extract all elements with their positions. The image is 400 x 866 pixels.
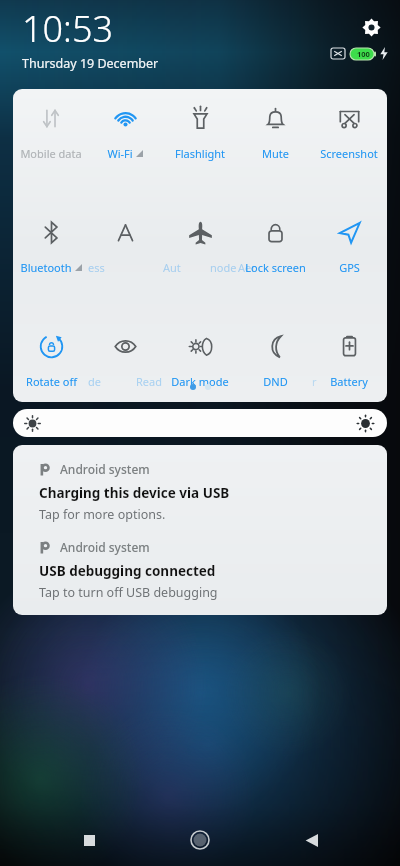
staticText: 100: [357, 49, 370, 59]
button[interactable]: Rotate off: [14, 333, 88, 389]
staticText: Android system: [60, 461, 150, 477]
button[interactable]: Android system: [13, 523, 387, 601]
button[interactable]: Bluetooth: [14, 219, 88, 275]
staticText: Flashlight: [175, 146, 225, 161]
button[interactable]: Dark mode: [163, 333, 237, 389]
staticText: DND: [263, 374, 288, 389]
button[interactable]: Recents: [67, 818, 111, 862]
button[interactable]: Back: [289, 818, 333, 862]
staticText: Charging this device via USB: [39, 484, 230, 502]
staticText: Battery: [330, 374, 368, 389]
button[interactable]: DND: [238, 333, 312, 389]
staticText: Rotate off: [26, 374, 77, 389]
staticText: Mute: [262, 146, 289, 161]
button[interactable]: Quick setting: [88, 219, 162, 275]
button[interactable]: Aer: [238, 219, 312, 275]
button[interactable]: Brightness: [13, 409, 387, 437]
staticText: Read: [136, 374, 162, 389]
button[interactable]: Screenshot: [312, 105, 386, 161]
staticText: GPS: [339, 260, 360, 275]
button[interactable]: Settings: [354, 10, 388, 44]
button[interactable]: r: [312, 333, 386, 389]
button[interactable]: Wi-Fi: [88, 105, 162, 161]
staticText: Wi-Fi: [107, 146, 133, 161]
staticText: Tap for more options.: [39, 506, 166, 523]
staticText: ess: [88, 260, 105, 275]
button[interactable]: Home: [178, 818, 222, 862]
button[interactable]: Mute: [238, 105, 312, 161]
staticText: de: [88, 374, 101, 389]
button[interactable]: Quick setting: [163, 219, 237, 275]
staticText: Thursday 19 December: [22, 55, 159, 72]
staticText: Aer: [238, 260, 256, 275]
staticText: Aut: [163, 260, 181, 275]
button[interactable]: Quick setting: [88, 333, 162, 389]
staticText: Screenshot: [320, 146, 378, 161]
staticText: Lock screen: [245, 260, 306, 275]
button[interactable]: Android system: [13, 445, 387, 523]
staticText: Android system: [60, 539, 150, 555]
button[interactable]: GPS: [312, 219, 386, 275]
staticText: Dark mode: [171, 374, 229, 389]
staticText: Bluetooth: [20, 260, 72, 275]
staticText: Tap to turn off USB debugging: [39, 584, 218, 601]
button[interactable]: Flashlight: [163, 105, 237, 161]
staticText: node: [210, 260, 237, 275]
staticText: r: [312, 374, 317, 389]
staticText: 10:53: [22, 4, 114, 53]
button[interactable]: Mobile data: [14, 105, 88, 161]
staticText: Mobile data: [20, 146, 82, 161]
staticText: USB debugging connected: [39, 562, 216, 580]
